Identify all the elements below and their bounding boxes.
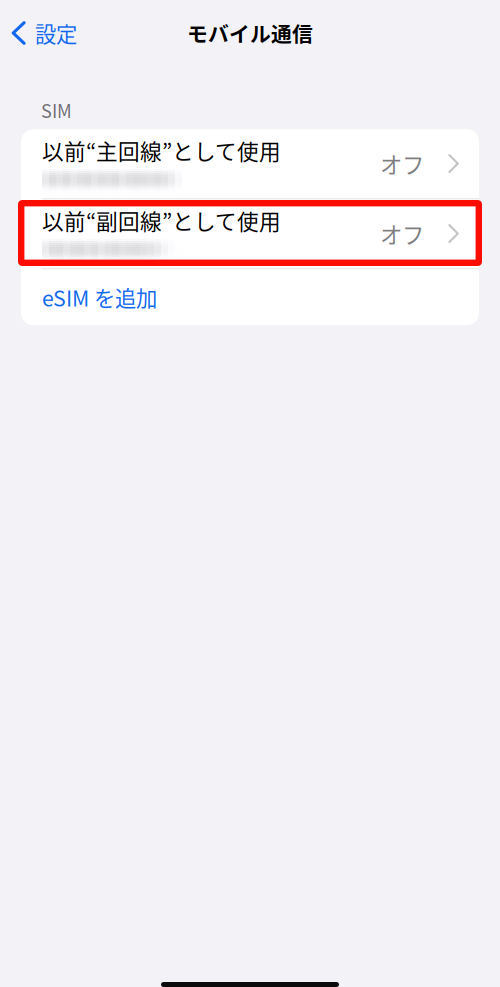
staticText: オフ — [380, 147, 424, 180]
button[interactable]: 設定 — [0, 10, 77, 56]
staticText: オフ — [380, 217, 424, 250]
staticText: モバイル通信 — [187, 18, 313, 48]
staticText: 設定 — [35, 18, 77, 48]
button[interactable]: 以前“主回線”として使用 — [21, 129, 479, 198]
staticText: eSIM を追加 — [42, 282, 157, 313]
staticText: 以前“主回線”として使用 — [42, 135, 281, 166]
button[interactable]: 以前“副回線”として使用 — [21, 199, 479, 268]
button[interactable]: eSIM を追加 — [21, 269, 479, 325]
staticText: 以前“副回線”として使用 — [42, 205, 281, 236]
staticText: SIM — [41, 97, 72, 123]
